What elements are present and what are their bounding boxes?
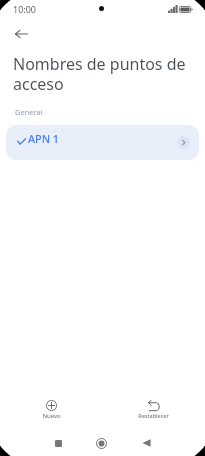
- staticText: Nuevo: [42, 412, 61, 420]
- button[interactable]: APN 1: [6, 125, 199, 160]
- staticText: General: [15, 107, 43, 117]
- button[interactable]: Recents: [48, 433, 68, 453]
- button[interactable]: Back: [136, 433, 156, 453]
- staticText: APN 1: [28, 131, 60, 146]
- button[interactable]: Back: [8, 21, 34, 47]
- button[interactable]: Nuevo: [35, 400, 67, 420]
- staticText: 10:00: [13, 3, 37, 15]
- button[interactable]: Home: [91, 433, 111, 453]
- staticText: Nombres de puntos de acceso: [13, 53, 186, 94]
- button[interactable]: Restablecer: [134, 400, 172, 420]
- staticText: Restablecer: [138, 412, 169, 420]
- button[interactable]: Open APN details: [177, 136, 190, 149]
